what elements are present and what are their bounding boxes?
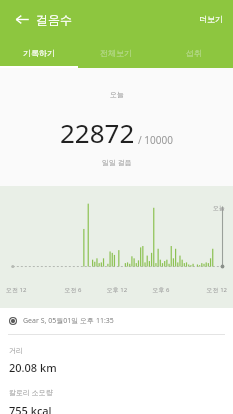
staticText: 일일 걸음 [102,158,132,168]
button[interactable]: 더보기 [195,10,227,28]
staticText: Gear S, 05월01일 오후 11:35 [23,316,114,326]
button[interactable]: 기록하기 [0,38,77,68]
staticText: 오전 12 [183,286,227,294]
staticText: 755 kcal [9,403,52,414]
button[interactable]: 섭취 [155,38,233,68]
staticText: 칼로리 소모량 [9,388,53,398]
staticText: / 10000 [138,133,173,147]
staticText: 20.08 km [9,360,57,375]
staticText: 오전 12 [6,286,51,294]
staticText: 오늘 [213,204,225,212]
button[interactable]: 전체보기 [77,38,155,68]
staticText: 22872 [60,115,135,150]
staticText: 섭취 [186,48,202,58]
staticText: 오후 12 [95,286,139,294]
staticText: 전체보기 [100,48,132,58]
staticText: 걸음수 [36,12,72,27]
staticText: 오후 6 [139,286,183,294]
staticText: 오늘 [110,90,124,99]
staticText: 기록하기 [23,48,55,58]
button[interactable]: Back [8,5,36,33]
staticText: 거리 [9,346,23,355]
button[interactable]: Gear S, 05월01일 오후 11:35 [0,308,233,334]
staticText: 더보기 [199,14,223,24]
staticText: 오전 6 [51,286,95,294]
